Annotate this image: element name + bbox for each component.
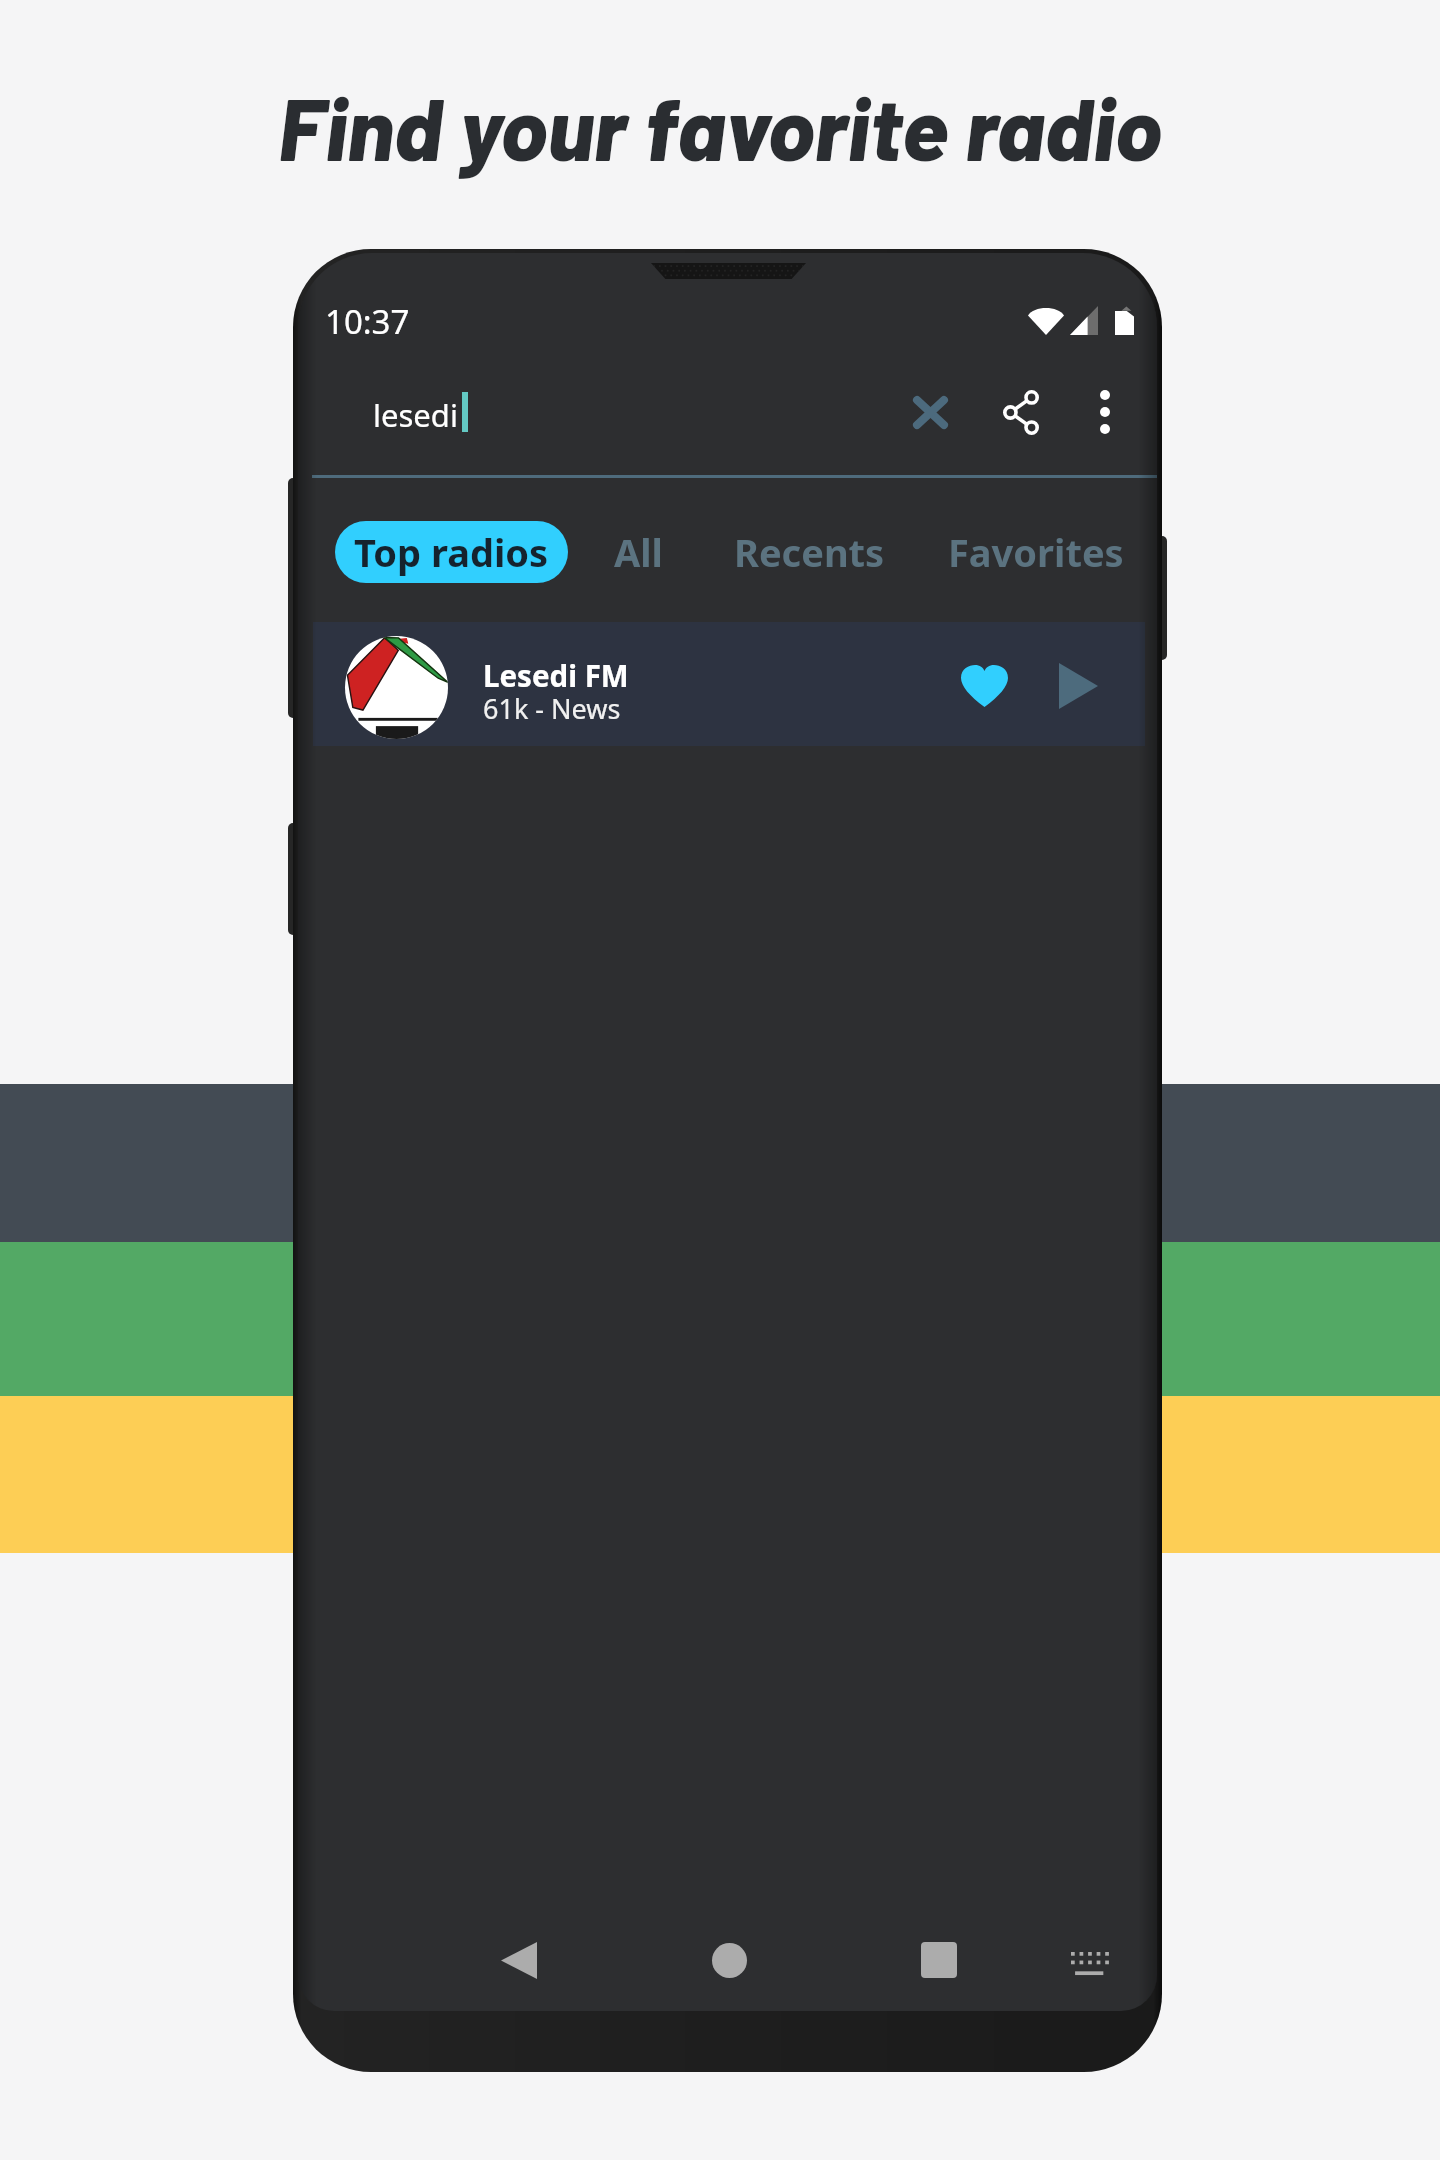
button[interactable]: More options xyxy=(1057,364,1153,460)
button[interactable]: All xyxy=(600,521,677,583)
button[interactable]: Keyboard xyxy=(1047,1920,1137,2010)
staticText: Lesedi FM xyxy=(483,655,629,695)
staticText: Favorites xyxy=(948,526,1124,578)
staticText: 61k - News xyxy=(483,690,621,727)
button[interactable]: Recents xyxy=(720,521,899,583)
button[interactable]: Recent apps xyxy=(894,1915,984,2005)
staticText: Top radios xyxy=(354,526,549,578)
button[interactable]: Clear search xyxy=(882,364,978,460)
button[interactable] xyxy=(313,622,1145,746)
button[interactable]: Favorite xyxy=(936,638,1032,734)
button[interactable]: Favorites xyxy=(934,521,1138,583)
button[interactable]: Share xyxy=(973,364,1069,460)
button[interactable]: Play xyxy=(1030,638,1126,734)
button[interactable]: Home xyxy=(684,1915,774,2005)
button[interactable]: Back xyxy=(474,1915,564,2005)
button[interactable]: Top radios xyxy=(335,521,568,583)
staticText: All xyxy=(614,526,663,578)
staticText: Recents xyxy=(734,526,885,578)
staticText: Find your favorite radio xyxy=(0,73,1440,178)
staticText: lesedi xyxy=(373,394,458,436)
staticText: 10:37 xyxy=(325,299,410,344)
